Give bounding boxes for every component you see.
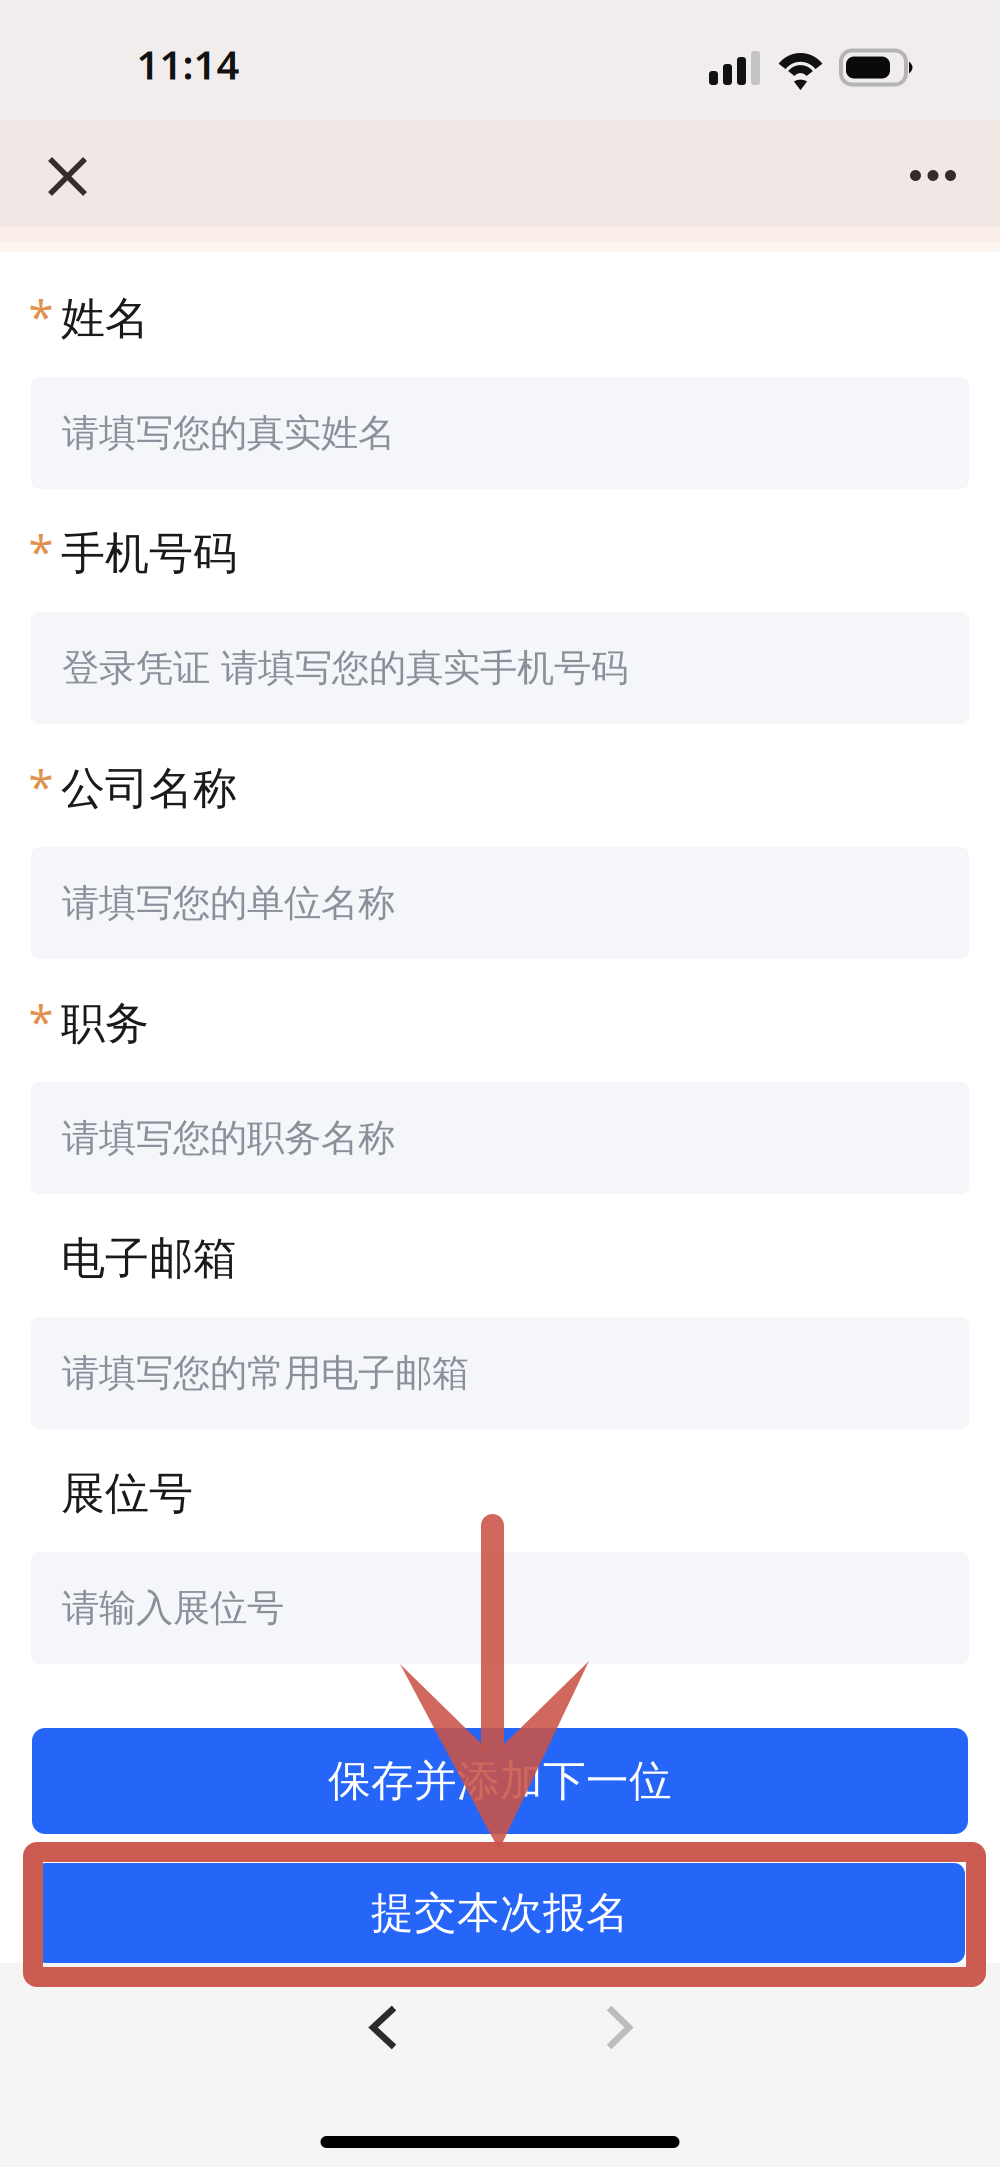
staticText: 请输入展位号 — [62, 1585, 284, 1631]
button[interactable]: 提交本次报名 — [0, 1863, 1000, 1963]
staticText: 请填写您的职务名称 — [62, 1115, 395, 1161]
button[interactable]: Close — [21, 130, 114, 223]
button[interactable]: More — [880, 137, 986, 214]
staticText: * — [28, 286, 53, 347]
staticText: 职务 — [61, 996, 149, 1050]
staticText: 姓名 — [61, 291, 149, 345]
staticText: 11:14 — [136, 37, 239, 90]
staticText: 公司名称 — [61, 761, 237, 815]
staticText: 请填写您的常用电子邮箱 — [62, 1350, 469, 1396]
button[interactable]: 保存并添加下一位 — [0, 1728, 1000, 1834]
button[interactable]: Forward — [575, 1984, 663, 2071]
staticText: * — [28, 991, 53, 1052]
staticText: 电子邮箱 — [61, 1231, 237, 1285]
staticText: 登录凭证 请填写您的真实手机号码 — [62, 645, 628, 691]
staticText: 手机号码 — [61, 526, 237, 580]
button[interactable]: Back — [339, 1984, 428, 2071]
staticText: * — [28, 756, 53, 817]
staticText: 保存并添加下一位 — [328, 1755, 672, 1807]
staticText: 提交本次报名 — [371, 1887, 629, 1939]
staticText: 请填写您的单位名称 — [62, 880, 395, 926]
staticText: 展位号 — [61, 1466, 193, 1520]
staticText: * — [28, 521, 53, 582]
staticText: 请填写您的真实姓名 — [62, 410, 395, 456]
